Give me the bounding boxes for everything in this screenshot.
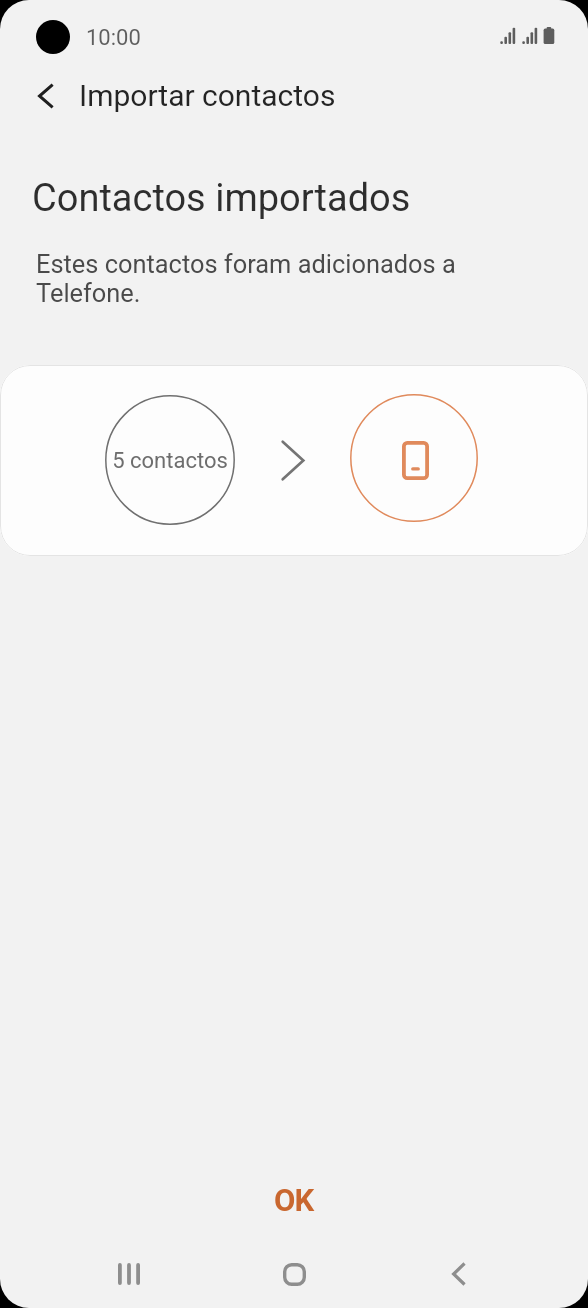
staticText: Importar contactos [79, 78, 336, 113]
staticText: 10:00 [86, 25, 141, 51]
staticText: 5 contactos [112, 448, 228, 474]
button[interactable]: OK [0, 1161, 588, 1239]
staticText: OK [274, 1182, 314, 1218]
button[interactable]: Recent apps [85, 1237, 173, 1308]
staticText: Contactos importados [32, 176, 411, 221]
staticText: Estes contactos foram adicionados a Tele… [36, 249, 456, 308]
button[interactable]: Back [22, 73, 68, 119]
button[interactable]: Home [250, 1237, 338, 1308]
button[interactable]: Back [414, 1237, 502, 1308]
